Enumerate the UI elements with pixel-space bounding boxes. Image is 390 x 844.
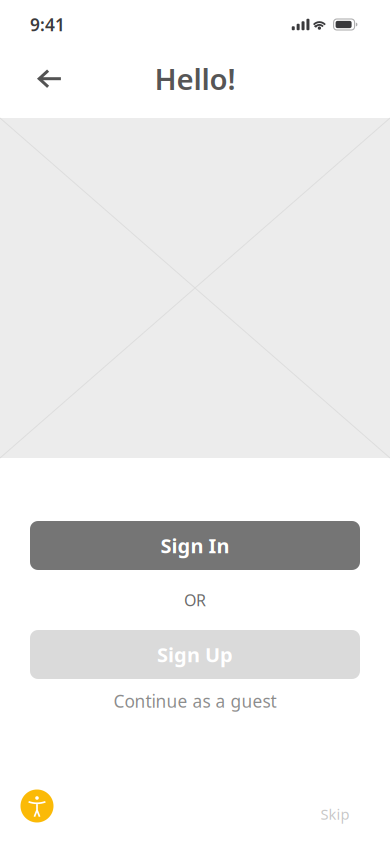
- button[interactable]: Sign In: [30, 521, 360, 570]
- button[interactable]: Back: [26, 55, 72, 101]
- button[interactable]: Sign Up: [30, 630, 360, 679]
- staticText: Hello!: [154, 59, 235, 98]
- button[interactable]: Accessibility options: [15, 784, 59, 828]
- button[interactable]: Skip: [312, 795, 358, 833]
- staticText: OR: [184, 589, 206, 611]
- staticText: Continue as a guest: [113, 689, 276, 712]
- staticText: 9:41: [30, 13, 65, 36]
- staticText: Skip: [320, 804, 349, 824]
- staticText: Sign Up: [157, 641, 233, 668]
- staticText: Sign In: [160, 532, 229, 559]
- button[interactable]: Continue as a guest: [30, 679, 360, 723]
